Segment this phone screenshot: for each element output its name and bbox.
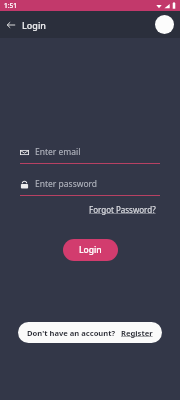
staticText: Enter password [35,178,98,190]
staticText: 1:51 [4,1,17,10]
staticText: Login [79,244,102,256]
other: Back [6,20,16,30]
staticText: Register [121,328,153,338]
button[interactable]: Email [20,146,160,164]
staticText: Enter email [35,146,81,158]
button[interactable]: Login [63,239,118,261]
button[interactable]: Profile [155,15,174,34]
staticText: Forgot Password? [89,204,156,215]
button[interactable]: Don't have an account? [18,322,162,343]
other: Password [20,180,29,189]
button[interactable]: Back [0,15,54,35]
button[interactable]: Forgot Password? [87,202,158,217]
button[interactable]: Password [20,178,160,196]
staticText: Login [22,19,46,31]
staticText: Don't have an account? [27,328,116,338]
other: Email [20,148,29,157]
